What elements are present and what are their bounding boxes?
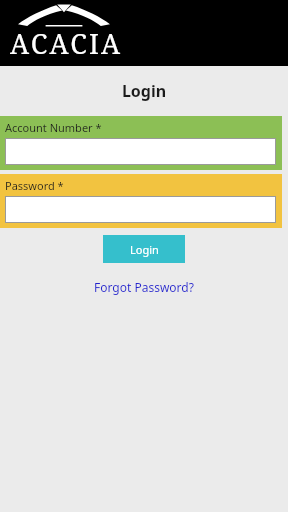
button[interactable]: Forgot Password? [88,277,200,297]
button[interactable]: Account Number * [0,116,282,170]
staticText: Login [130,242,159,257]
staticText: ACACIA [10,25,123,62]
staticText: Password * [5,178,64,193]
other: Acacia logo [18,3,110,26]
button[interactable]: Password * [0,174,282,228]
button[interactable]: Login [103,235,185,263]
staticText: Account Number * [5,120,102,135]
staticText: Forgot Password? [94,279,194,295]
staticText: Login [0,80,288,102]
